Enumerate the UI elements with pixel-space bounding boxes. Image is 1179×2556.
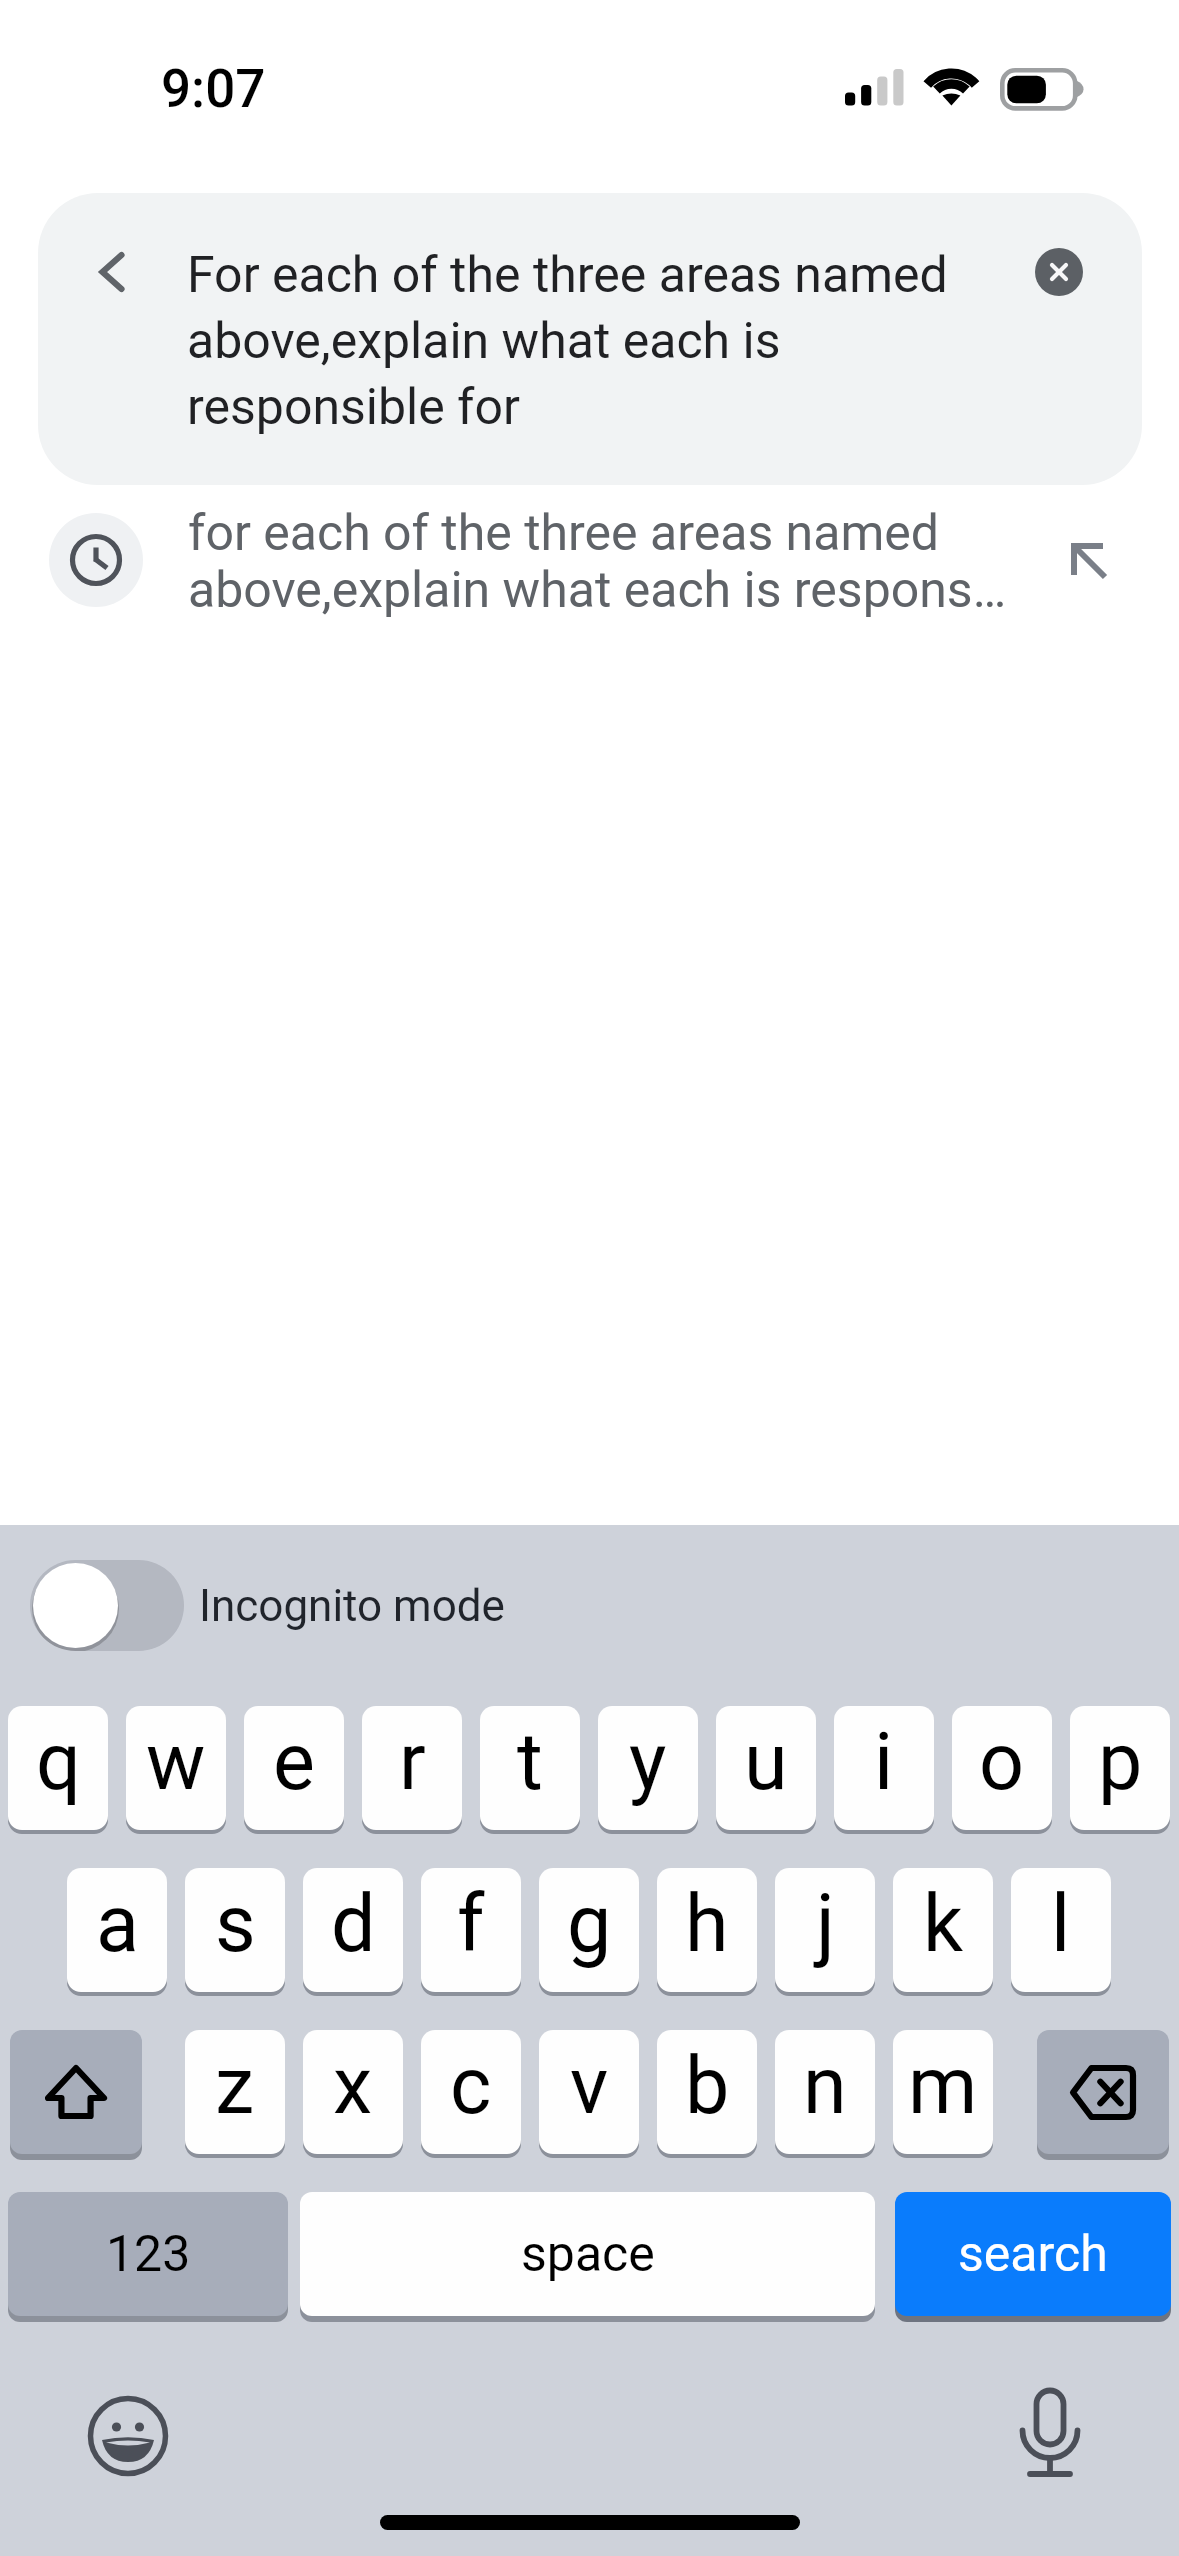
staticText: u xyxy=(744,1716,788,1809)
button[interactable]: z xyxy=(185,2030,285,2154)
button[interactable]: y xyxy=(598,1706,698,1830)
staticText: y xyxy=(629,1716,667,1809)
button[interactable]: Shift xyxy=(10,2030,142,2154)
staticText: q xyxy=(36,1716,81,1809)
button[interactable]: Backspace xyxy=(1037,2030,1169,2154)
button[interactable]: w xyxy=(126,1706,226,1830)
button[interactable]: Voice input xyxy=(990,2376,1110,2496)
button[interactable]: g xyxy=(539,1868,639,1992)
button[interactable]: i xyxy=(834,1706,934,1830)
button[interactable]: Incognito mode xyxy=(30,1560,505,1651)
staticText: k xyxy=(923,1878,964,1971)
button[interactable]: o xyxy=(952,1706,1052,1830)
staticText: space xyxy=(521,2225,655,2284)
button[interactable]: Back xyxy=(64,226,156,318)
button[interactable]: n xyxy=(775,2030,875,2154)
button[interactable]: search xyxy=(895,2192,1171,2316)
button[interactable]: l xyxy=(1011,1868,1111,1992)
staticText: d xyxy=(331,1878,376,1971)
button[interactable]: h xyxy=(657,1868,757,1992)
staticText: n xyxy=(803,2040,847,2133)
staticText: t xyxy=(517,1716,543,1809)
button[interactable]: Emoji xyxy=(68,2376,188,2496)
staticText: s xyxy=(215,1878,256,1971)
staticText: z xyxy=(215,2040,255,2133)
staticText: o xyxy=(979,1716,1025,1809)
button[interactable]: e xyxy=(244,1706,344,1830)
button[interactable]: Insert suggestion xyxy=(1049,521,1129,601)
button[interactable]: m xyxy=(893,2030,993,2154)
button[interactable]: v xyxy=(539,2030,639,2154)
button[interactable]: space xyxy=(300,2192,875,2316)
staticText: Incognito mode xyxy=(199,1580,505,1632)
staticText: a xyxy=(96,1878,139,1971)
staticText: f xyxy=(457,1878,485,1971)
staticText: b xyxy=(685,2040,730,2133)
button[interactable]: k xyxy=(893,1868,993,1992)
button[interactable]: u xyxy=(716,1706,816,1830)
button[interactable]: Clear search xyxy=(1035,248,1083,296)
staticText: search xyxy=(958,2225,1108,2284)
button[interactable]: q xyxy=(8,1706,108,1830)
staticText: r xyxy=(399,1716,426,1809)
button[interactable]: t xyxy=(480,1706,580,1830)
staticText: h xyxy=(685,1878,729,1971)
button[interactable]: a xyxy=(67,1868,167,1992)
button[interactable]: p xyxy=(1070,1706,1170,1830)
staticText: e xyxy=(273,1716,315,1809)
staticText: l xyxy=(1051,1878,1071,1971)
button[interactable]: x xyxy=(303,2030,403,2154)
button[interactable]: d xyxy=(303,1868,403,1992)
staticText: g xyxy=(567,1878,612,1971)
staticText: x xyxy=(333,2040,373,2133)
staticText: for each of the three areas named above,… xyxy=(188,504,1028,619)
button[interactable]: Back xyxy=(38,193,1142,485)
staticText: j xyxy=(816,1878,835,1971)
button[interactable]: j xyxy=(775,1868,875,1992)
button[interactable]: for each of the three areas named above,… xyxy=(0,487,1179,647)
button[interactable]: 123 xyxy=(8,2192,288,2316)
staticText: 9:07 xyxy=(161,58,266,120)
staticText: i xyxy=(874,1716,894,1809)
staticText: For each of the three areas named above,… xyxy=(187,246,977,436)
button[interactable]: c xyxy=(421,2030,521,2154)
staticText: p xyxy=(1098,1716,1143,1809)
staticText: c xyxy=(450,2040,492,2133)
staticText: v xyxy=(570,2040,609,2133)
button[interactable]: f xyxy=(421,1868,521,1992)
staticText: m xyxy=(908,2040,978,2133)
button[interactable]: r xyxy=(362,1706,462,1830)
button[interactable]: b xyxy=(657,2030,757,2154)
staticText: 123 xyxy=(106,2225,191,2284)
staticText: w xyxy=(146,1716,206,1809)
button[interactable]: s xyxy=(185,1868,285,1992)
